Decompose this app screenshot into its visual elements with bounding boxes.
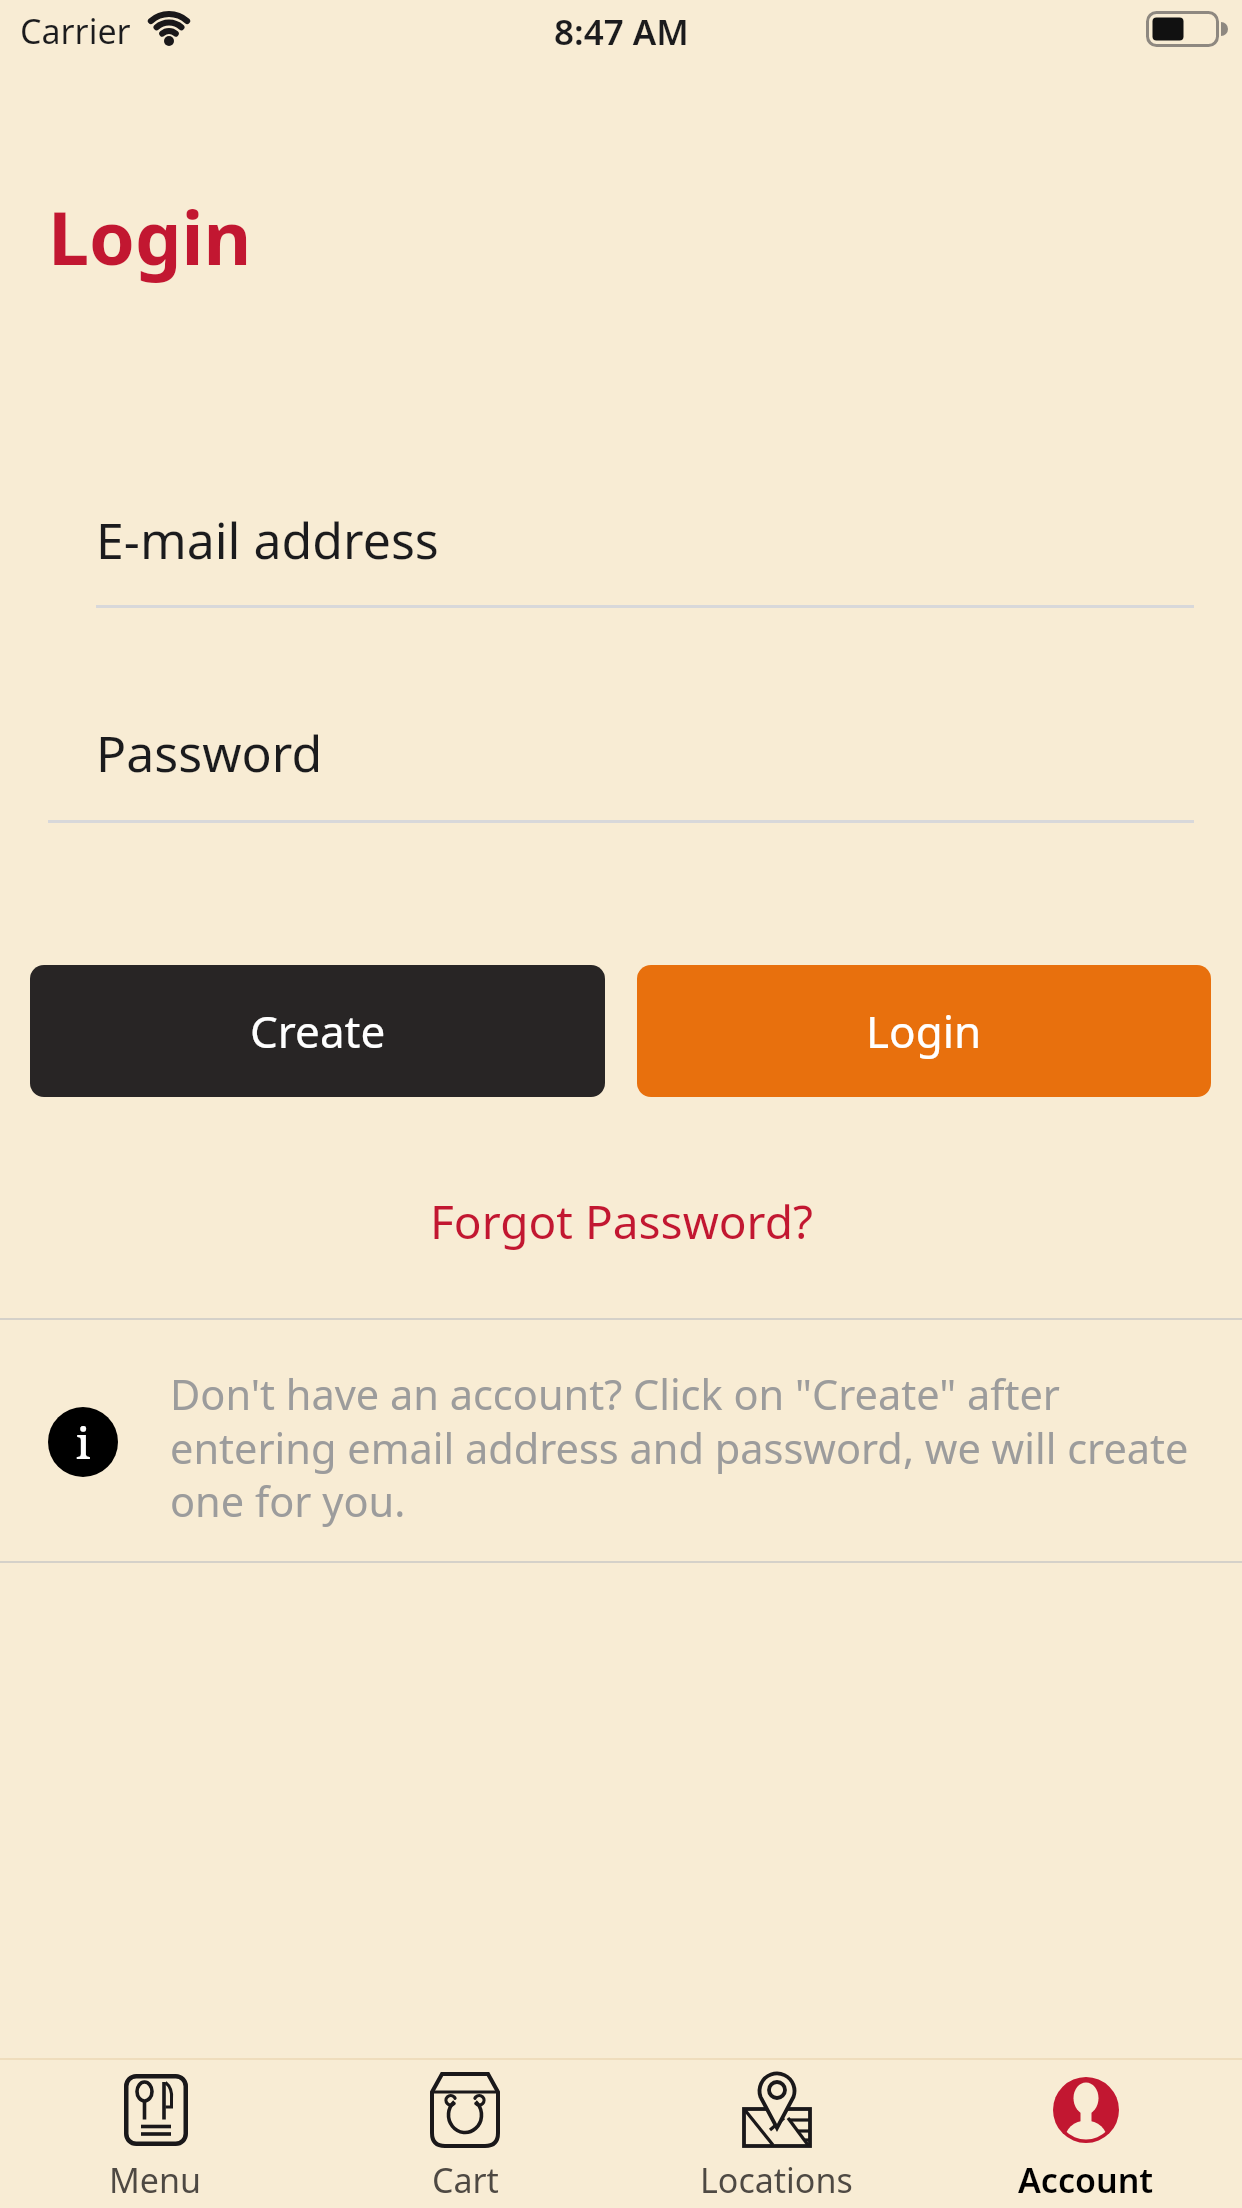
staticText: Login <box>866 1001 982 1061</box>
button[interactable]: Menu <box>50 2062 260 2208</box>
button[interactable]: Locations <box>671 2062 881 2208</box>
staticText: Account <box>1018 2157 1154 2203</box>
staticText: Locations <box>700 2157 853 2203</box>
button[interactable]: Create <box>30 965 605 1097</box>
staticText: E-mail address <box>96 506 439 574</box>
staticText: 8:47 AM <box>554 8 689 56</box>
button[interactable]: Cart <box>360 2062 570 2208</box>
staticText: Password <box>96 719 323 787</box>
button[interactable]: Forgot Password? <box>430 1190 813 1253</box>
button[interactable] <box>48 699 1194 823</box>
staticText: Carrier <box>20 8 131 54</box>
staticText: Cart <box>432 2157 499 2203</box>
staticText: Menu <box>109 2157 202 2203</box>
button[interactable]: Login <box>637 965 1211 1097</box>
staticText: Login <box>48 186 252 286</box>
button[interactable]: Account <box>981 2062 1191 2208</box>
staticText: Create <box>250 1001 386 1061</box>
button[interactable] <box>48 486 1194 608</box>
staticText: Don't have an account? Click on "Create"… <box>170 1366 1189 1529</box>
staticText: i <box>76 1412 91 1472</box>
staticText: Forgot Password? <box>430 1190 813 1253</box>
